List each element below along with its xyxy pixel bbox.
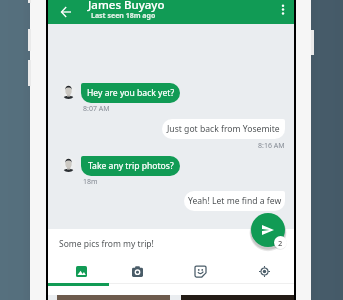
button[interactable]: Contact photo: [61, 84, 76, 99]
button[interactable]: Send: [251, 213, 285, 247]
button[interactable]: Just got back from Yosemite: [162, 119, 285, 139]
button[interactable]: Hey are you back yet?: [81, 83, 180, 103]
staticText: Take any trip photos?: [88, 160, 174, 172]
button[interactable]: Camera: [107, 259, 167, 283]
staticText: Just got back from Yosemite: [167, 123, 280, 135]
staticText: 18m: [83, 177, 98, 187]
button[interactable]: Yeah! Let me find a few: [184, 191, 285, 211]
button[interactable]: Gallery: [51, 259, 111, 283]
staticText: 8:16 AM: [258, 141, 285, 151]
staticText: Some pics from my trip!: [59, 238, 154, 250]
button[interactable]: Back: [55, 0, 76, 24]
staticText: 8:07 AM: [83, 104, 110, 114]
button[interactable]: Take any trip photos?: [81, 156, 180, 176]
staticText: Hey are you back yet?: [87, 87, 175, 99]
button[interactable]: More options: [273, 0, 293, 24]
button[interactable]: Stickers: [170, 259, 230, 283]
button[interactable]: 2 unread: [274, 236, 287, 249]
staticText: James Buyayo: [88, 0, 165, 13]
button[interactable]: Location: [234, 259, 294, 283]
button[interactable]: Contact photo: [61, 157, 76, 172]
staticText: Yeah! Let me find a few: [188, 195, 282, 207]
staticText: Last seen 18m ago: [91, 11, 156, 21]
staticText: 2: [278, 238, 283, 248]
